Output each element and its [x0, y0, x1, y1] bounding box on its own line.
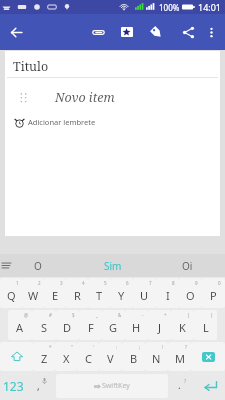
button[interactable]: More options [197, 14, 225, 50]
staticText: P [210, 288, 217, 303]
staticText: 123 [3, 378, 24, 394]
staticText: 4 [82, 280, 85, 286]
staticText: SwiftKey [102, 381, 130, 391]
staticText: Sim [104, 259, 122, 273]
staticText: I [166, 288, 170, 303]
staticText: K [179, 320, 186, 335]
staticText: Novo item [55, 89, 115, 106]
button[interactable]: 4 [66, 278, 88, 308]
button[interactable]: 7 [133, 278, 156, 308]
button[interactable]: & [102, 310, 125, 340]
staticText: ) [211, 312, 213, 318]
staticText: - [142, 312, 144, 318]
staticText: Titulo [13, 58, 49, 75]
button[interactable]: Label [142, 14, 170, 50]
button[interactable]: Backspace [191, 342, 225, 371]
button[interactable]: Enter [196, 372, 225, 400]
button[interactable]: Favorite [113, 14, 141, 50]
staticText: : [116, 344, 118, 350]
staticText: ? [184, 378, 187, 385]
button[interactable]: , [28, 372, 55, 400]
button[interactable]: Share [174, 14, 202, 50]
staticText: * [49, 344, 52, 350]
button[interactable]: - [125, 310, 148, 340]
button[interactable]: ; [122, 342, 145, 371]
button[interactable]: Adicionar lembrete [14, 114, 96, 130]
button[interactable]: Back [2, 14, 30, 50]
button[interactable]: + [148, 310, 171, 340]
staticText: # [49, 312, 52, 318]
button[interactable]: : [99, 342, 122, 371]
staticText: S [41, 320, 48, 335]
staticText: ? [185, 344, 187, 350]
staticText: F [88, 320, 94, 335]
staticText: T [96, 288, 103, 303]
button[interactable]: $ [56, 310, 79, 340]
staticText: G [109, 320, 118, 335]
staticText: X [63, 351, 70, 366]
staticText: & [118, 312, 122, 318]
staticText: ; [139, 344, 141, 350]
staticText: V [107, 351, 114, 366]
button[interactable]: @ [8, 310, 32, 340]
button[interactable]: 3 [44, 278, 66, 308]
staticText: B [130, 351, 138, 366]
button[interactable]: 1 [0, 278, 22, 308]
button[interactable]: 2 [22, 278, 44, 308]
staticText: ! [162, 344, 164, 350]
staticText: Q [7, 288, 16, 303]
button[interactable]: ' [77, 342, 99, 371]
button[interactable]: Keyboard menu [0, 254, 13, 277]
button[interactable]: 123 [0, 372, 28, 400]
button[interactable]: Space [56, 374, 168, 398]
button[interactable]: 0 [202, 278, 225, 308]
staticText: M [175, 351, 185, 366]
button[interactable]: Shift [0, 342, 33, 371]
staticText: 14:01 [198, 1, 222, 13]
staticText: Z [41, 351, 48, 366]
button[interactable]: 5 [88, 278, 110, 308]
button[interactable]: ) [194, 310, 217, 340]
button[interactable]: Novo item [55, 87, 115, 107]
staticText: + [164, 312, 167, 318]
button[interactable]: ( [171, 310, 194, 340]
staticText: 1 [16, 280, 19, 286]
staticText: D [63, 320, 72, 335]
staticText: N [152, 351, 161, 366]
staticText: _ [96, 312, 98, 318]
button[interactable]: Titulo [13, 55, 225, 77]
staticText: . [178, 378, 181, 392]
staticText: R [74, 288, 81, 303]
button[interactable]: 6 [110, 278, 133, 308]
staticText: 2 [38, 280, 41, 286]
button[interactable]: 8 [156, 278, 179, 308]
staticText: " [71, 344, 73, 350]
staticText: U [140, 288, 149, 303]
button[interactable]: * [33, 342, 55, 371]
button[interactable]: O [0, 254, 75, 277]
button[interactable]: Attach [84, 14, 112, 50]
button[interactable]: _ [79, 310, 102, 340]
staticText: O [34, 259, 42, 273]
staticText: 8 [172, 280, 175, 286]
button[interactable]: Oi [150, 254, 225, 277]
staticText: ' [93, 344, 95, 350]
button[interactable]: ? [168, 342, 191, 371]
staticText: , [37, 379, 40, 393]
staticText: J [158, 320, 162, 335]
staticText: 0 [218, 280, 221, 286]
staticText: $ [72, 312, 75, 318]
staticText: H [132, 320, 141, 335]
staticText: Adicionar lembrete [28, 117, 96, 127]
staticText: 6 [126, 280, 129, 286]
staticText: 100% [159, 2, 180, 13]
button[interactable]: . [169, 372, 196, 400]
staticText: 7 [149, 280, 152, 286]
staticText: 9 [195, 280, 198, 286]
button[interactable]: Sim [75, 254, 150, 277]
button[interactable]: " [55, 342, 77, 371]
button[interactable]: # [32, 310, 56, 340]
button[interactable]: 9 [179, 278, 202, 308]
staticText: 3 [60, 280, 63, 286]
button[interactable]: ! [145, 342, 168, 371]
